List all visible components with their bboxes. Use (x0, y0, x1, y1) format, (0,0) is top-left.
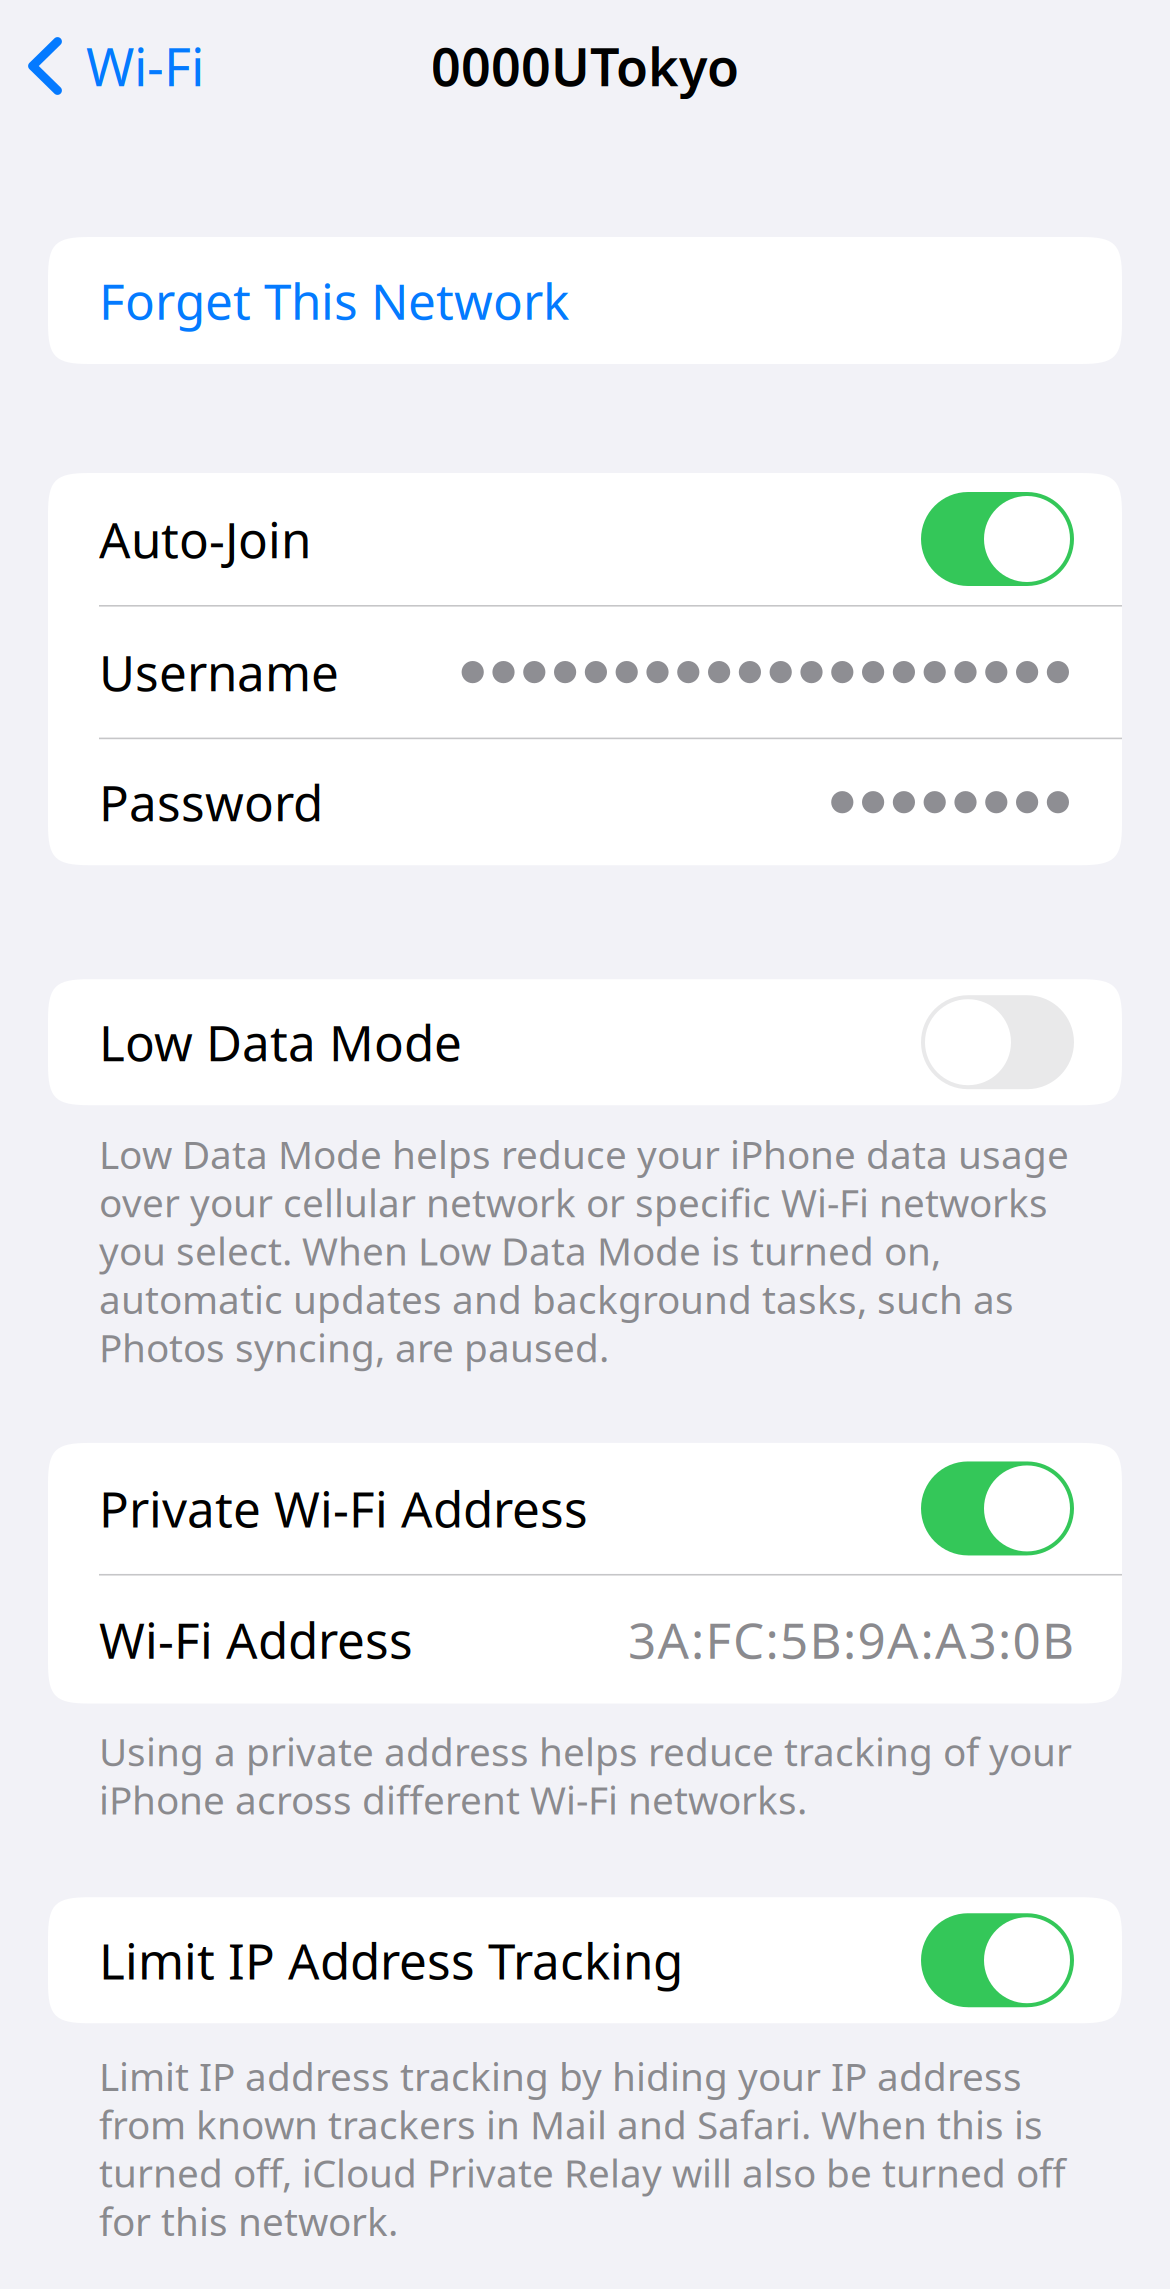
staticText: Forget This Network (99, 268, 569, 333)
staticText: 3A:FC:5B:9A:A3:0B (628, 1607, 1074, 1672)
staticText: Auto-Join (99, 506, 311, 572)
button[interactable]: Username (48, 607, 1122, 738)
button[interactable]: Wi-Fi Address (48, 1575, 1122, 1703)
staticText: Wi-Fi (86, 31, 204, 101)
button[interactable]: Wi-Fi (0, 0, 224, 132)
button[interactable]: Low Data Mode (48, 979, 1122, 1105)
staticText: Using a private address helps reduce tra… (99, 1725, 1072, 1825)
button[interactable]: Private Wi-Fi Address (48, 1443, 1122, 1574)
staticText: Limit IP Address Tracking (99, 1927, 683, 1993)
staticText: 0000UTokyo (431, 31, 739, 101)
staticText: Low Data Mode helps reduce your iPhone d… (99, 1128, 1069, 1373)
staticText: Wi-Fi Address (99, 1607, 413, 1672)
staticText: Private Wi-Fi Address (99, 1476, 588, 1541)
button[interactable]: Forget This Network (48, 237, 1122, 364)
staticText: Limit IP address tracking by hiding your… (99, 2050, 1066, 2247)
staticText: Low Data Mode (99, 1009, 462, 1075)
button[interactable]: Password (48, 739, 1122, 865)
button[interactable]: Limit IP Address Tracking (48, 1897, 1122, 2023)
staticText: Password (99, 769, 323, 835)
button[interactable]: Auto-Join (48, 473, 1122, 605)
staticText: Username (99, 639, 339, 705)
